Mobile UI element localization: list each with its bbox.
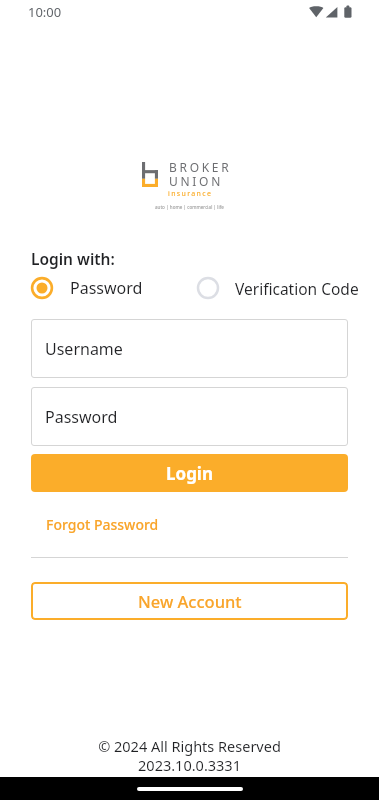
staticText: © 2024 All Rights Reserved	[98, 736, 281, 756]
staticText: Verification Code	[235, 278, 359, 299]
button[interactable]: Username	[31, 319, 348, 378]
staticText: Password	[70, 277, 143, 299]
staticText: UNION	[169, 173, 223, 189]
button[interactable]: Forgot Password	[46, 512, 159, 536]
staticText: insurance	[168, 189, 213, 199]
button[interactable]: New Account	[31, 582, 348, 620]
staticText: Login with:	[31, 248, 115, 269]
button[interactable]: Password	[31, 387, 348, 446]
staticText: New Account	[138, 590, 242, 612]
button[interactable]: Login	[31, 454, 348, 492]
button[interactable]: Password	[30, 276, 143, 300]
staticText: 10:00	[28, 3, 62, 21]
staticText: Login	[166, 462, 214, 485]
staticText: 2023.10.0.3331	[138, 755, 241, 775]
staticText: Password	[45, 406, 118, 428]
staticText: Forgot Password	[46, 515, 159, 534]
staticText: BROKER	[169, 159, 232, 175]
staticText: auto | home | commercial | life	[155, 204, 224, 210]
button[interactable]: Verification Code	[196, 276, 359, 300]
staticText: Username	[45, 338, 123, 360]
